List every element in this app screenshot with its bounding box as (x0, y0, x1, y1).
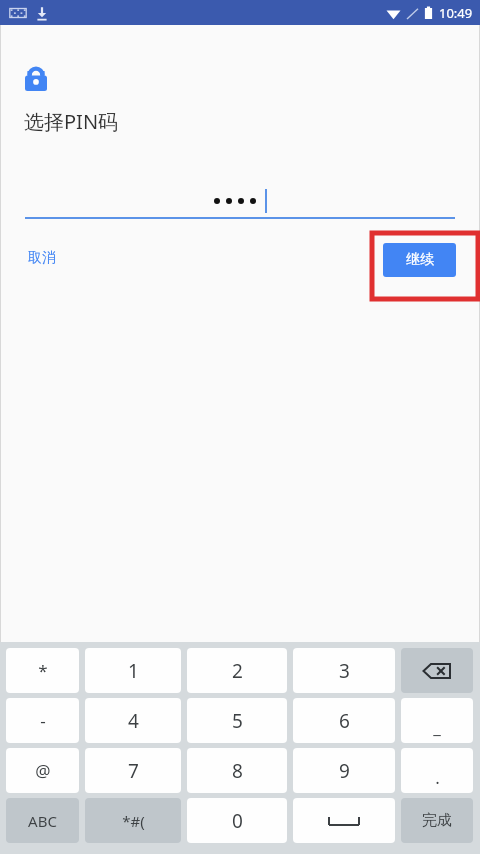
staticText: 0 (232, 808, 243, 834)
staticText: 2 (232, 658, 243, 684)
button[interactable]: 8 (187, 748, 287, 793)
staticText: 4 (128, 708, 139, 734)
button[interactable]: 9 (293, 748, 395, 793)
staticText: _ (433, 716, 441, 739)
button[interactable]: 5 (187, 698, 287, 743)
staticText: 8 (232, 758, 243, 784)
button[interactable]: 继续 (383, 243, 456, 277)
button[interactable]: * (6, 648, 79, 693)
staticText: ABC (28, 811, 57, 831)
staticText: * (38, 659, 48, 682)
staticText: @ (35, 759, 51, 782)
staticText: 继续 (406, 251, 434, 269)
staticText: 完成 (422, 811, 452, 830)
button[interactable]: Backspace (401, 648, 473, 693)
button[interactable]: 6 (293, 698, 395, 743)
button[interactable]: 3 (293, 648, 395, 693)
staticText: 1 (128, 658, 139, 684)
button[interactable]: @ (6, 748, 79, 793)
staticText: 10:49 (439, 4, 473, 22)
staticText: 7 (128, 758, 139, 784)
button[interactable]: 2 (187, 648, 287, 693)
staticText: 选择PIN码 (24, 108, 119, 135)
staticText: 6 (339, 708, 350, 734)
staticText: . (435, 766, 440, 789)
button[interactable] (25, 185, 455, 217)
button[interactable]: 完成 (401, 798, 473, 843)
button[interactable]: ABC (6, 798, 79, 843)
button[interactable]: Space (293, 798, 395, 843)
staticText: 9 (339, 758, 350, 784)
button[interactable]: 取消 (22, 245, 62, 271)
staticText: 取消 (28, 249, 56, 267)
button[interactable]: 7 (85, 748, 181, 793)
button[interactable]: - (6, 698, 79, 743)
staticText: 3 (339, 658, 350, 684)
button[interactable]: . (401, 748, 473, 793)
staticText: 5 (232, 708, 243, 734)
button[interactable]: 4 (85, 698, 181, 743)
button[interactable]: *#( (85, 798, 181, 843)
staticText: - (40, 709, 46, 732)
button[interactable]: 1 (85, 648, 181, 693)
button[interactable]: 0 (187, 798, 287, 843)
staticText: *#( (122, 811, 145, 831)
button[interactable]: _ (401, 698, 473, 743)
